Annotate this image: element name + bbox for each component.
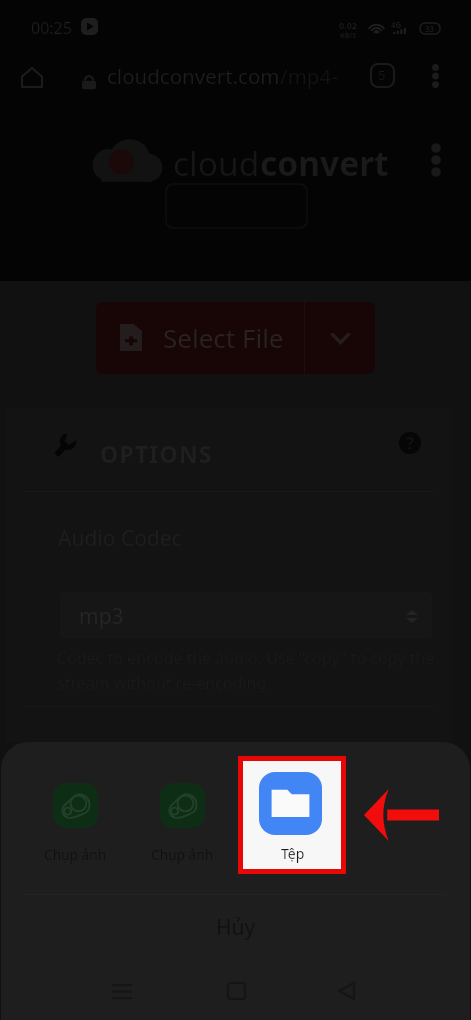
- staticText: /mp4-: [280, 62, 338, 90]
- staticText: Select File: [163, 320, 284, 355]
- staticText: 00:25: [31, 17, 72, 39]
- button[interactable]: Tabs: [361, 58, 403, 92]
- button[interactable]: Chụp ảnh: [137, 783, 227, 873]
- staticText: Hủy: [216, 913, 256, 942]
- staticText: 0.02: [339, 19, 357, 31]
- button[interactable]: Select File: [96, 302, 304, 374]
- button[interactable]: More options: [417, 58, 453, 94]
- button[interactable]: Help: [389, 422, 431, 464]
- staticText: Chụp ảnh: [44, 845, 107, 864]
- staticText: Tệp: [281, 844, 305, 863]
- staticText: Chụp ảnh: [151, 845, 214, 864]
- staticText: ?: [406, 432, 415, 455]
- staticText: cloudconvert.com: [107, 62, 280, 90]
- staticText: 33: [425, 23, 435, 34]
- staticText: 5: [378, 66, 386, 84]
- staticText: mp3: [79, 602, 124, 631]
- staticText: convert: [260, 140, 389, 186]
- staticText: cloud: [173, 140, 260, 186]
- staticText: Audio Codec: [58, 524, 182, 553]
- staticText: KB/S: [340, 31, 357, 41]
- button[interactable]: Home: [12, 57, 52, 97]
- staticText: 4G: [391, 19, 402, 30]
- button[interactable]: Tệp: [243, 761, 341, 869]
- button[interactable]: Menu: [416, 130, 456, 190]
- button[interactable]: Chụp ảnh: [30, 783, 120, 873]
- staticText: OPTIONS: [100, 438, 213, 469]
